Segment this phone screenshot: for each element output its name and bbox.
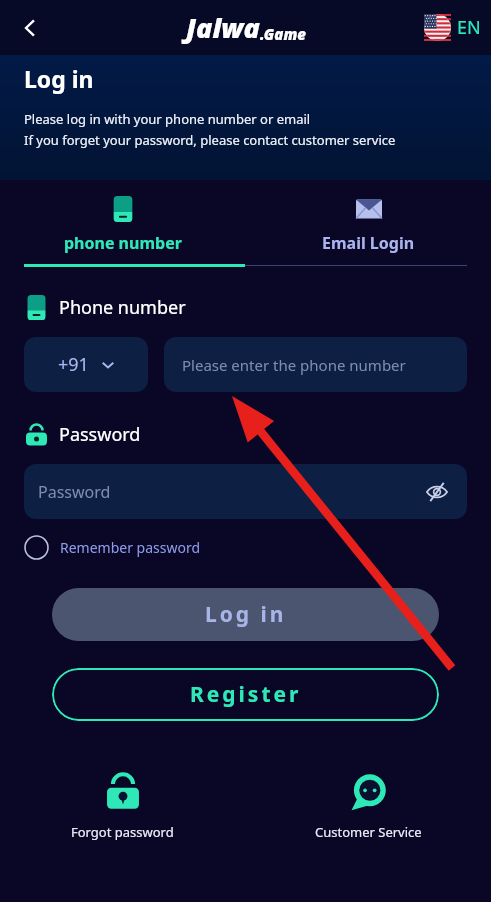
button[interactable]: Show password — [421, 476, 453, 508]
staticText: phone number — [64, 232, 182, 254]
staticText: Please log in with your phone number or … — [24, 110, 311, 128]
button[interactable]: Please enter the phone number — [164, 337, 467, 392]
staticText: Please enter the phone number — [182, 355, 406, 375]
staticText: Jalwa — [186, 9, 260, 46]
staticText: Password — [59, 422, 141, 447]
staticText: EN — [457, 15, 481, 40]
button[interactable]: Log in — [52, 588, 439, 641]
staticText: Register — [190, 680, 302, 709]
button[interactable]: Forgot password — [65, 765, 180, 847]
staticText: Forgot password — [71, 823, 174, 841]
button[interactable]: Remember password — [24, 535, 201, 560]
staticText: .Game — [260, 24, 306, 44]
staticText: Phone number — [59, 295, 186, 320]
button[interactable]: Email Login — [245, 188, 491, 264]
button[interactable]: Back — [8, 6, 52, 50]
staticText: +91 — [58, 352, 89, 377]
staticText: Log in — [24, 63, 94, 94]
button[interactable]: phone number — [0, 188, 245, 264]
staticText: Password — [38, 481, 111, 503]
staticText: If you forget your password, please cont… — [24, 131, 396, 149]
staticText: Customer Service — [315, 823, 422, 841]
button[interactable]: Password — [24, 464, 467, 519]
staticText: Email Login — [322, 232, 415, 254]
staticText: Remember password — [60, 538, 201, 557]
button[interactable]: +91 — [24, 337, 148, 392]
button[interactable]: Customer Service — [309, 765, 428, 847]
button[interactable]: EN — [424, 14, 481, 41]
button[interactable]: Register — [52, 668, 439, 721]
staticText: Log in — [205, 600, 287, 629]
